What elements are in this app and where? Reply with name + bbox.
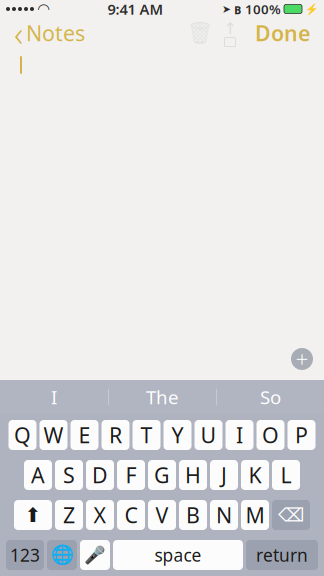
button[interactable]: E	[70, 420, 98, 450]
staticText: O	[262, 421, 279, 449]
button[interactable]: O	[256, 420, 284, 450]
staticText: P	[295, 421, 308, 449]
staticText: D	[92, 461, 108, 489]
button[interactable]: The	[109, 380, 216, 414]
staticText: The	[146, 385, 179, 409]
staticText: S	[63, 461, 75, 489]
button[interactable]: K	[241, 460, 269, 490]
button[interactable]: ‹	[4, 18, 95, 48]
button[interactable]: C	[117, 500, 145, 530]
staticText: ⚡	[305, 3, 318, 15]
staticText: 100%	[245, 0, 281, 18]
button[interactable]: Delete	[185, 18, 215, 48]
staticText: Q	[14, 421, 31, 449]
button[interactable]: M	[241, 500, 269, 530]
button[interactable]: U	[194, 420, 222, 450]
button[interactable]: Share	[215, 18, 245, 48]
staticText: G	[154, 461, 170, 489]
staticText: K	[248, 461, 261, 489]
staticText: H	[185, 461, 201, 489]
button[interactable]: J	[210, 460, 238, 490]
button[interactable]: S	[55, 460, 83, 490]
staticText: X	[93, 501, 106, 529]
button[interactable]: ⬆	[14, 500, 52, 530]
staticText: 🌐	[50, 544, 73, 566]
staticText: Notes	[26, 19, 85, 47]
staticText: 9:41 AM	[107, 0, 163, 19]
staticText: So	[260, 385, 281, 409]
staticText: ʙ	[234, 0, 242, 18]
staticText: M	[245, 501, 264, 529]
staticText: Done	[255, 19, 310, 47]
staticText: F	[125, 461, 136, 489]
button[interactable]: H	[179, 460, 207, 490]
staticText: C	[124, 501, 137, 529]
staticText: L	[280, 461, 291, 489]
button[interactable]: Done	[245, 18, 320, 48]
button[interactable]: Add attachment	[287, 344, 317, 374]
staticText: U	[200, 421, 216, 449]
button[interactable]: 123	[6, 540, 44, 570]
button[interactable]: P	[287, 420, 315, 450]
staticText: space	[154, 543, 201, 566]
staticText: J	[221, 461, 227, 489]
staticText: 123	[10, 543, 40, 566]
button[interactable]: Q	[8, 420, 36, 450]
button[interactable]: Y	[163, 420, 191, 450]
staticText: E	[78, 421, 90, 449]
staticText: I	[51, 385, 57, 409]
button[interactable]: D	[86, 460, 114, 490]
button[interactable]: ⌫	[272, 500, 310, 530]
staticText: 🎤	[84, 545, 106, 565]
button[interactable]: 🌐	[47, 540, 77, 570]
staticText: R	[109, 421, 122, 449]
staticText: return	[256, 543, 308, 566]
button[interactable]: V	[148, 500, 176, 530]
staticText: B	[186, 501, 200, 529]
staticText: N	[216, 501, 232, 529]
staticText: T	[140, 421, 152, 449]
staticText: ⬆	[24, 504, 41, 526]
staticText: 🗑	[186, 21, 213, 45]
staticText: W	[43, 421, 63, 449]
button[interactable]: space	[113, 540, 243, 570]
staticText: ◠	[38, 1, 49, 17]
button[interactable]: A	[24, 460, 52, 490]
staticText: ↑	[223, 19, 236, 38]
button[interactable]: return	[246, 540, 318, 570]
staticText: ‹	[14, 10, 23, 56]
button[interactable]: 🎤	[80, 540, 110, 570]
staticText: ➤	[222, 3, 231, 15]
button[interactable]: I	[0, 380, 108, 414]
button[interactable]: So	[217, 380, 324, 414]
staticText: Z	[63, 501, 75, 529]
button[interactable]: N	[210, 500, 238, 530]
staticText: Y	[171, 421, 183, 449]
button[interactable]: W	[39, 420, 67, 450]
staticText: A	[31, 461, 45, 489]
staticText: +	[295, 344, 308, 374]
button[interactable]: X	[86, 500, 114, 530]
button[interactable]: I	[225, 420, 253, 450]
staticText: I	[236, 421, 243, 449]
button[interactable]: F	[117, 460, 145, 490]
button[interactable]: B	[179, 500, 207, 530]
button[interactable]: G	[148, 460, 176, 490]
button[interactable]: L	[272, 460, 300, 490]
staticText: ⌫	[278, 504, 304, 526]
button[interactable]: Z	[55, 500, 83, 530]
button[interactable]: R	[101, 420, 129, 450]
staticText: V	[155, 501, 168, 529]
button[interactable]: T	[132, 420, 160, 450]
